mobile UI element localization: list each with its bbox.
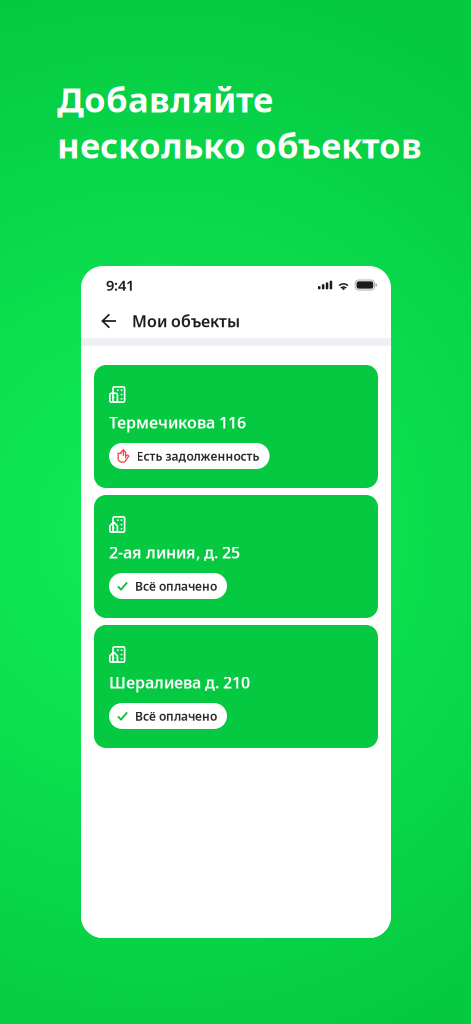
staticText: Шералиева д. 210: [109, 672, 250, 693]
staticText: 2-ая линия, д. 25: [109, 542, 240, 563]
staticText: Добавляйте: [57, 76, 273, 122]
staticText: Всё оплачено: [135, 708, 217, 724]
staticText: несколько объектов: [57, 122, 422, 168]
staticText: Есть задолженность: [137, 448, 260, 464]
button[interactable]: Шералиева д. 210: [94, 625, 378, 748]
staticText: Мои объекты: [132, 310, 240, 332]
button[interactable]: 2-ая линия, д. 25: [94, 495, 378, 618]
staticText: Термечикова 116: [109, 412, 246, 433]
staticText: Всё оплачено: [135, 578, 217, 594]
staticText: 9:41: [106, 275, 134, 295]
button[interactable]: Термечикова 116: [94, 365, 378, 488]
button[interactable]: Back: [96, 308, 122, 334]
